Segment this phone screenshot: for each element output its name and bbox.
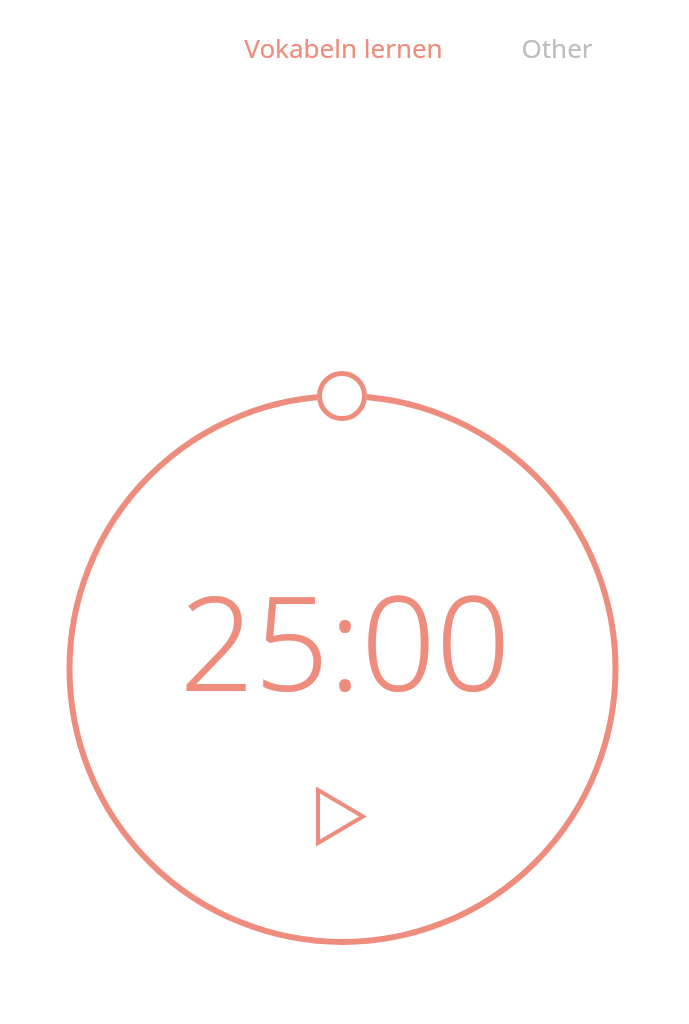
button[interactable]: Vokabeln lernen (244, 30, 443, 65)
staticText: Vokabeln lernen (244, 30, 443, 65)
button[interactable]: Start timer (302, 774, 386, 858)
staticText: Other (521, 30, 593, 65)
staticText: 25:00 (179, 551, 511, 729)
button[interactable]: Other (521, 30, 593, 65)
other: Timer dial (0, 0, 689, 1024)
